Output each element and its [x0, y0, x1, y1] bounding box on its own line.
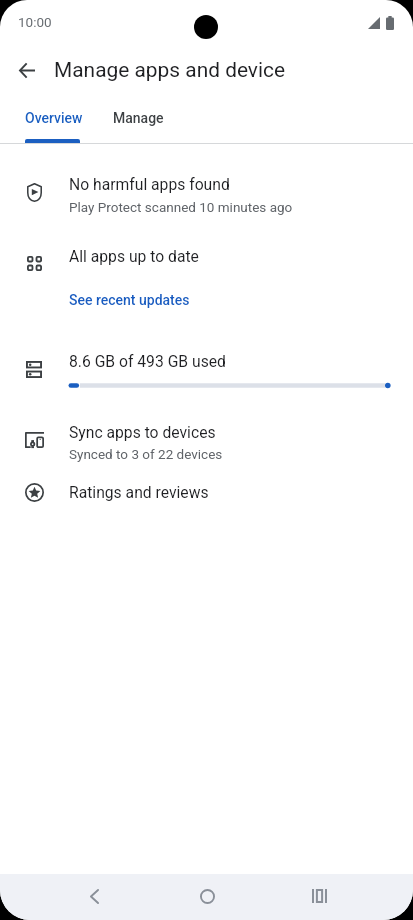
staticText: Manage: [113, 110, 164, 126]
staticText: Manage apps and device: [54, 58, 286, 82]
button[interactable]: Recent apps: [295, 873, 343, 919]
staticText: All apps up to date: [69, 247, 199, 265]
button[interactable]: Back: [70, 873, 118, 919]
staticText: Overview: [25, 110, 83, 126]
staticText: Ratings and reviews: [69, 483, 209, 501]
button[interactable]: Home: [183, 873, 231, 919]
button[interactable]: See recent updates: [58, 283, 179, 313]
button[interactable]: All apps up to date: [0, 238, 413, 286]
staticText: 8.6 GB of 493 GB used: [69, 352, 226, 370]
staticText: 10:00: [18, 14, 52, 30]
staticText: See recent updates: [69, 292, 190, 308]
button[interactable]: Manage: [97, 94, 162, 142]
button[interactable]: Sync apps to devices: [0, 414, 413, 468]
staticText: No harmful apps found: [69, 175, 230, 193]
staticText: Play Protect scanned 10 minutes ago: [69, 199, 293, 215]
staticText: Sync apps to devices: [69, 423, 216, 441]
button[interactable]: Overview: [9, 94, 74, 142]
staticText: Synced to 3 of 22 devices: [69, 446, 223, 462]
button[interactable]: No harmful apps found: [0, 166, 413, 222]
button[interactable]: 8.6 GB of 493 GB used: [0, 344, 413, 394]
button[interactable]: Back: [7, 50, 47, 90]
button[interactable]: Ratings and reviews: [0, 474, 413, 516]
